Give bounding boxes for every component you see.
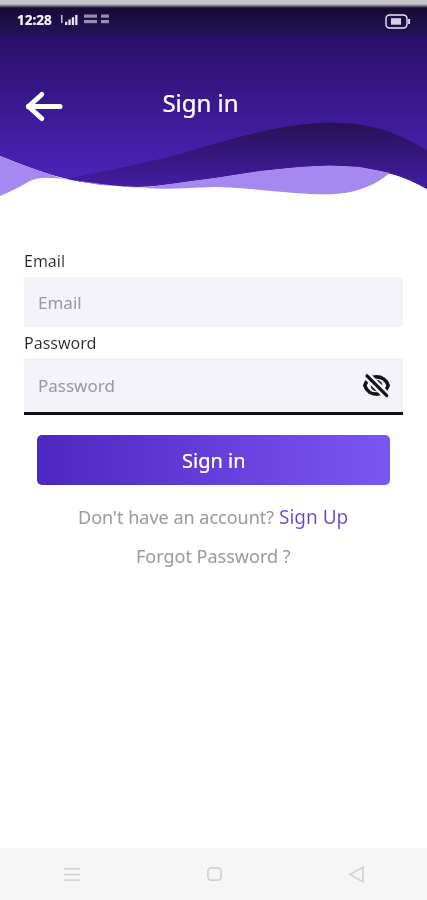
staticText: Email [24, 250, 66, 272]
staticText: Password [38, 374, 115, 397]
staticText: Sign in [182, 447, 246, 474]
staticText: Sign Up [279, 504, 349, 530]
button[interactable]: Email [24, 277, 403, 327]
staticText: Forgot Password ? [136, 544, 291, 569]
staticText: Password [24, 332, 97, 354]
button[interactable]: Home [143, 848, 285, 900]
staticText: Email [38, 291, 82, 314]
button[interactable]: Sign in [37, 435, 390, 485]
button[interactable]: Forgot Password ? [136, 544, 291, 569]
button[interactable]: Sign Up [279, 504, 349, 530]
button[interactable]: Recent apps [0, 848, 143, 900]
staticText: Don't have an account? [78, 505, 279, 530]
button[interactable]: Back [285, 848, 427, 900]
button[interactable]: Back [21, 84, 65, 128]
button[interactable]: Password [24, 358, 403, 412]
button[interactable]: Toggle password visibility [361, 370, 391, 400]
staticText: Sign in [0, 86, 414, 119]
staticText: 12:28 [17, 11, 52, 29]
